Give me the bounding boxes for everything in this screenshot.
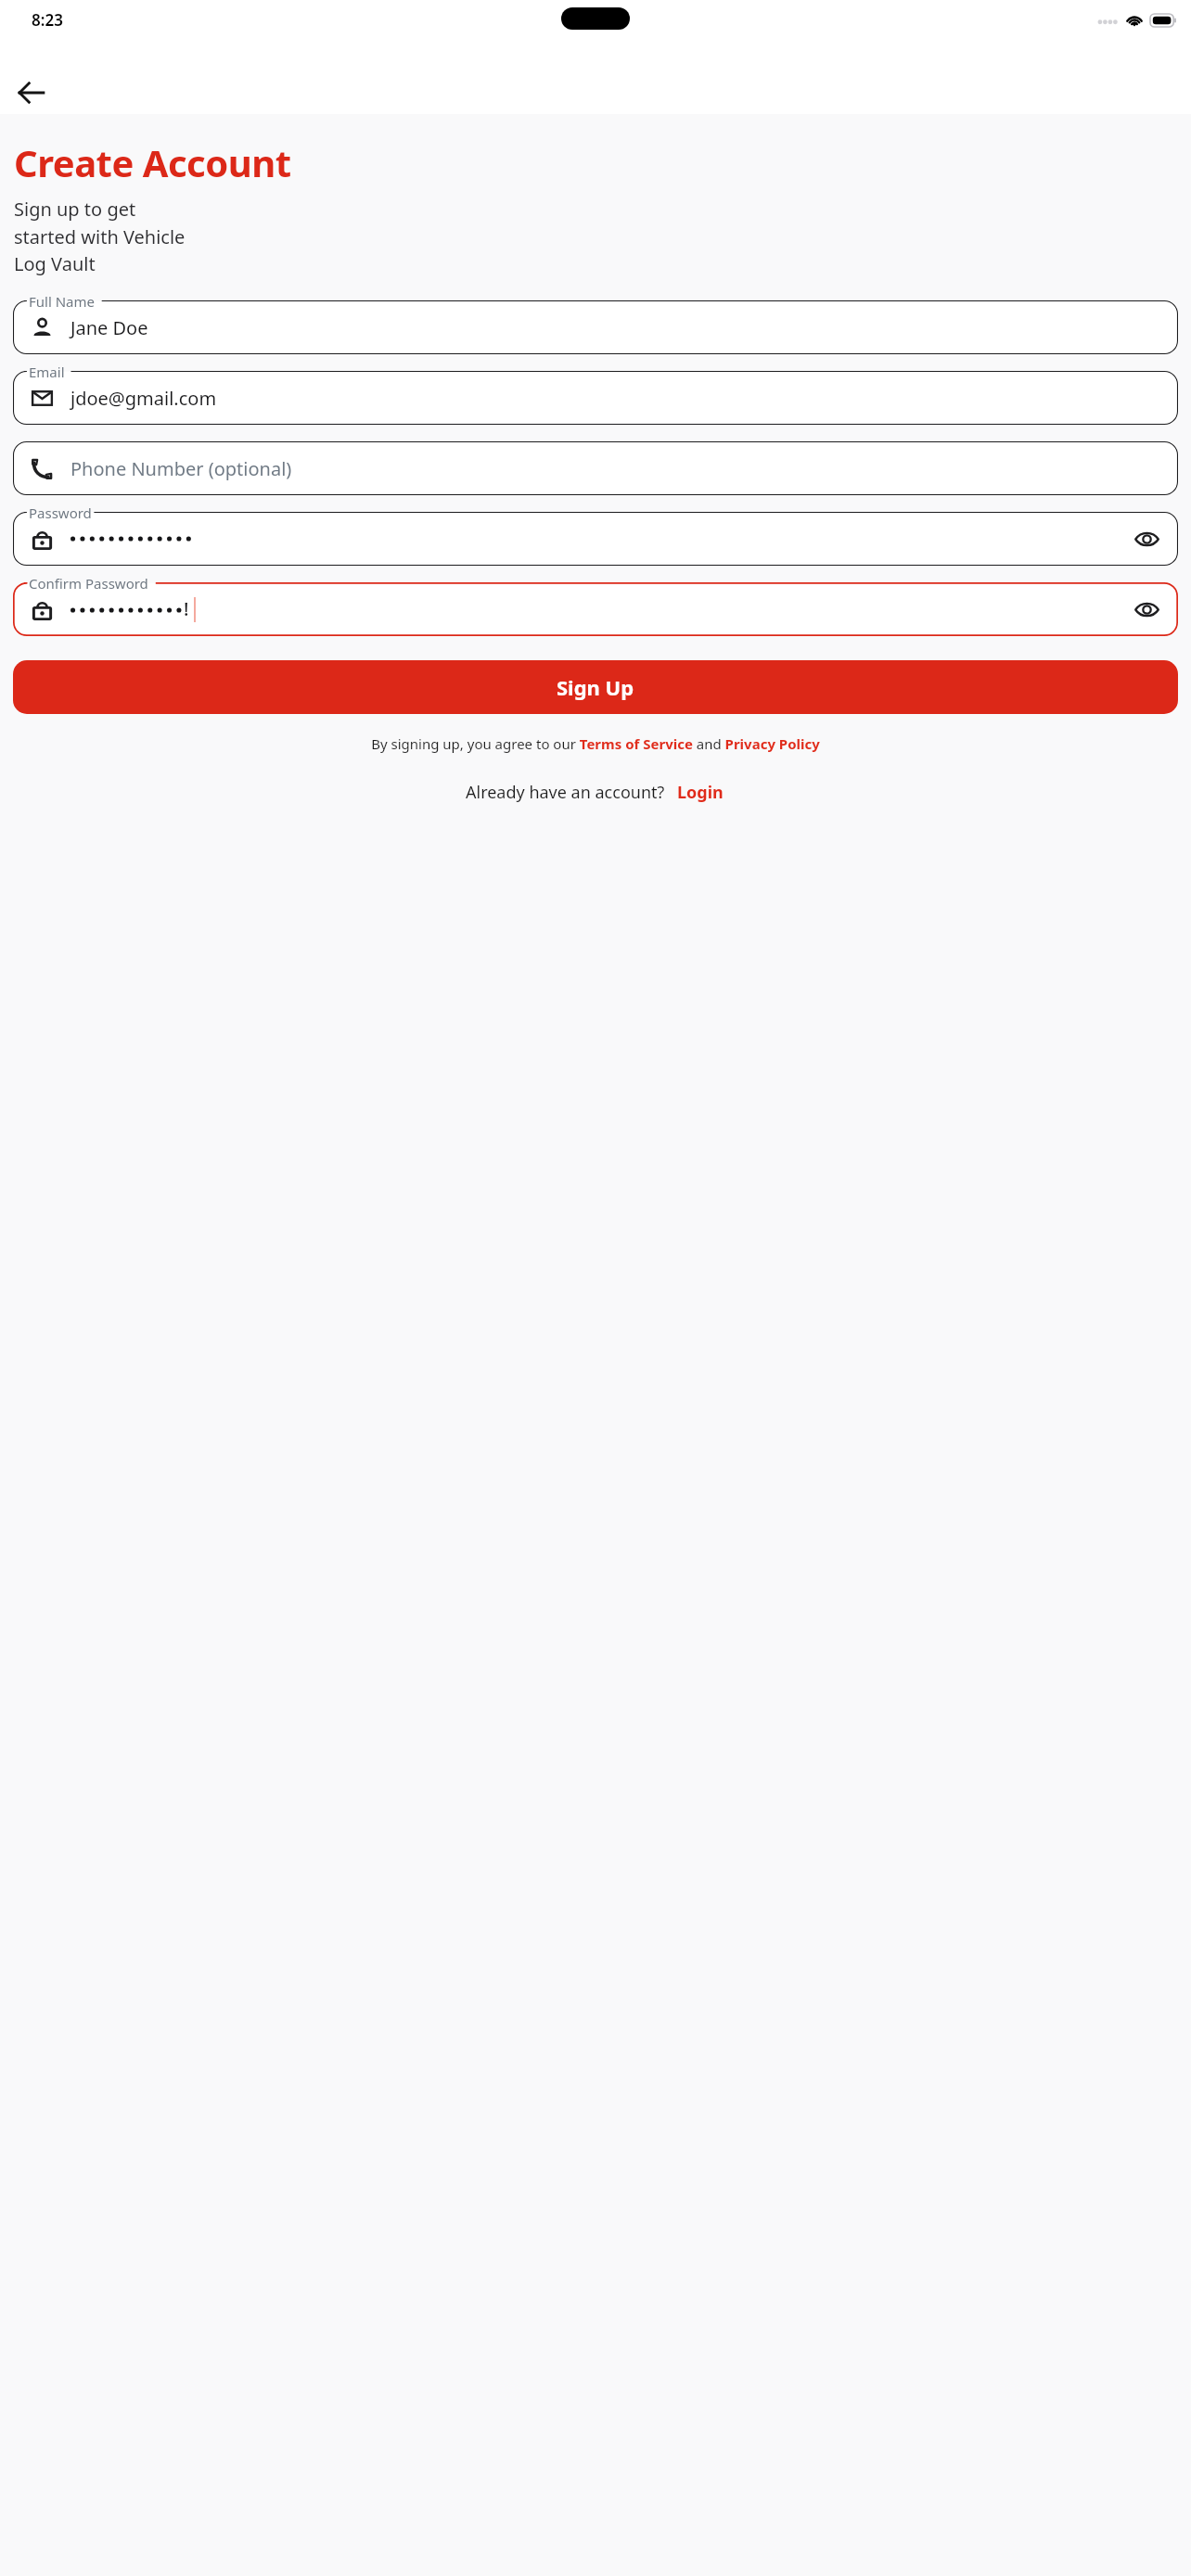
staticText: Confirm Password <box>29 574 148 593</box>
staticText: Phone Number (optional) <box>70 456 292 481</box>
staticText: Email <box>29 363 65 381</box>
staticText: Password <box>29 504 92 522</box>
button[interactable]: Confirm Password <box>13 582 1178 636</box>
staticText: Sign Up <box>557 673 634 701</box>
button[interactable]: Email <box>13 371 1178 425</box>
staticText: By signing up, you agree to our Terms of… <box>19 734 1172 753</box>
button[interactable]: Phone Number (optional) <box>13 441 1178 495</box>
staticText: Create Account <box>14 137 291 187</box>
staticText: Login <box>677 781 724 804</box>
staticText: ! <box>184 596 189 621</box>
staticText: Jane Doe <box>70 315 148 340</box>
button[interactable]: Password <box>13 512 1178 566</box>
staticText: jdoe@gmail.com <box>70 386 217 411</box>
button[interactable]: By signing up, you agree to our Terms of… <box>19 734 1172 753</box>
staticText: 8:23 <box>32 9 63 31</box>
button[interactable]: Toggle password visibility <box>1126 518 1167 559</box>
button[interactable]: Toggle password visibility <box>1126 589 1167 630</box>
staticText: Sign up to get started with Vehicle Log … <box>14 197 193 276</box>
staticText: Already have an account? <box>466 781 665 804</box>
button[interactable]: Back <box>6 67 58 119</box>
staticText: Full Name <box>29 292 95 311</box>
button[interactable]: Full Name <box>13 300 1178 354</box>
button[interactable]: Login <box>674 777 726 808</box>
button[interactable]: Sign Up <box>13 660 1178 714</box>
